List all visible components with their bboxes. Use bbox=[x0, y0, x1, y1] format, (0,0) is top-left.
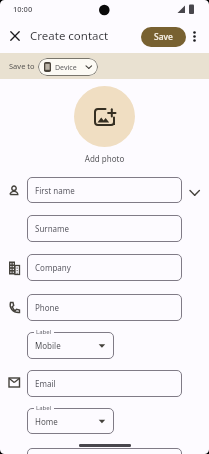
button[interactable]: First name bbox=[27, 177, 182, 203]
staticText: Home bbox=[35, 416, 58, 427]
button[interactable]: Device bbox=[38, 58, 98, 76]
staticText: Save to bbox=[9, 61, 35, 71]
button[interactable] bbox=[188, 27, 202, 45]
staticText: Add photo bbox=[0, 153, 209, 164]
staticText: 10:00 bbox=[13, 4, 33, 14]
button[interactable]: Surname bbox=[27, 215, 182, 242]
staticText: Save bbox=[154, 31, 173, 43]
button[interactable] bbox=[74, 86, 135, 147]
button[interactable]: Email bbox=[27, 370, 182, 397]
staticText: Create contact bbox=[30, 28, 109, 44]
staticText: Phone bbox=[35, 302, 60, 313]
button[interactable]: Save bbox=[141, 27, 186, 47]
staticText: Email bbox=[35, 378, 56, 389]
staticText: Label bbox=[36, 404, 52, 412]
staticText: First name bbox=[35, 185, 75, 196]
button[interactable]: Phone bbox=[27, 294, 182, 321]
staticText: Device bbox=[55, 63, 77, 73]
button[interactable]: Mobile bbox=[27, 332, 114, 359]
staticText: Mobile bbox=[35, 340, 61, 351]
button[interactable] bbox=[6, 27, 24, 45]
button[interactable]: Home bbox=[27, 408, 114, 434]
staticText: Label bbox=[36, 328, 52, 336]
button[interactable]: Company bbox=[27, 254, 182, 281]
staticText: Surname bbox=[35, 223, 70, 234]
staticText: Company bbox=[35, 262, 71, 273]
